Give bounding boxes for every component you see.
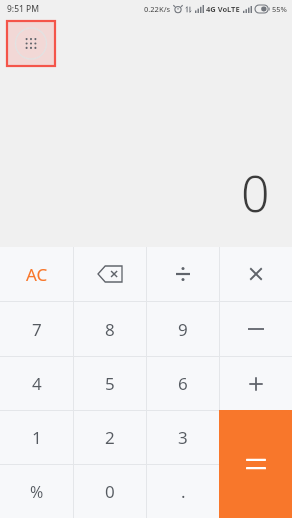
staticText: 0 [241, 159, 270, 227]
button[interactable]: 8 [74, 302, 146, 356]
button[interactable]: Minus [220, 302, 292, 356]
button[interactable]: % [0, 465, 73, 518]
staticText: 4 [32, 372, 42, 395]
staticText: 3 [178, 426, 188, 449]
button[interactable]: 2 [74, 411, 146, 464]
button[interactable]: Equals [219, 410, 292, 518]
button[interactable]: . [147, 465, 219, 518]
staticText: 0.22K/s [144, 4, 171, 14]
staticText: 6 [178, 372, 188, 395]
staticText: 9:51 PM [7, 3, 40, 15]
staticText: 0 [105, 480, 115, 503]
button[interactable]: 3 [147, 411, 219, 464]
button[interactable]: 7 [0, 302, 73, 356]
button[interactable]: AC [0, 247, 73, 301]
button[interactable]: Backspace [74, 247, 146, 301]
staticText: . [181, 480, 186, 503]
button[interactable]: 9 [147, 302, 219, 356]
staticText: % [30, 481, 44, 503]
button[interactable]: Menu [7, 21, 55, 66]
button[interactable]: Multiply [220, 247, 292, 301]
button[interactable]: Divide [147, 247, 219, 301]
staticText: 9 [178, 318, 188, 341]
button[interactable]: Plus [220, 357, 292, 410]
button[interactable]: 4 [0, 357, 73, 410]
staticText: 4G VoLTE [206, 4, 240, 14]
button[interactable]: 1 [0, 411, 73, 464]
staticText: 5 [105, 372, 115, 395]
button[interactable]: 5 [74, 357, 146, 410]
button[interactable]: 6 [147, 357, 219, 410]
staticText: 1 [32, 426, 42, 449]
staticText: AC [26, 263, 48, 286]
staticText: 55% [272, 4, 287, 14]
staticText: 8 [105, 318, 115, 341]
staticText: 2 [105, 426, 115, 449]
button[interactable]: 0 [74, 465, 146, 518]
staticText: 7 [32, 318, 42, 341]
